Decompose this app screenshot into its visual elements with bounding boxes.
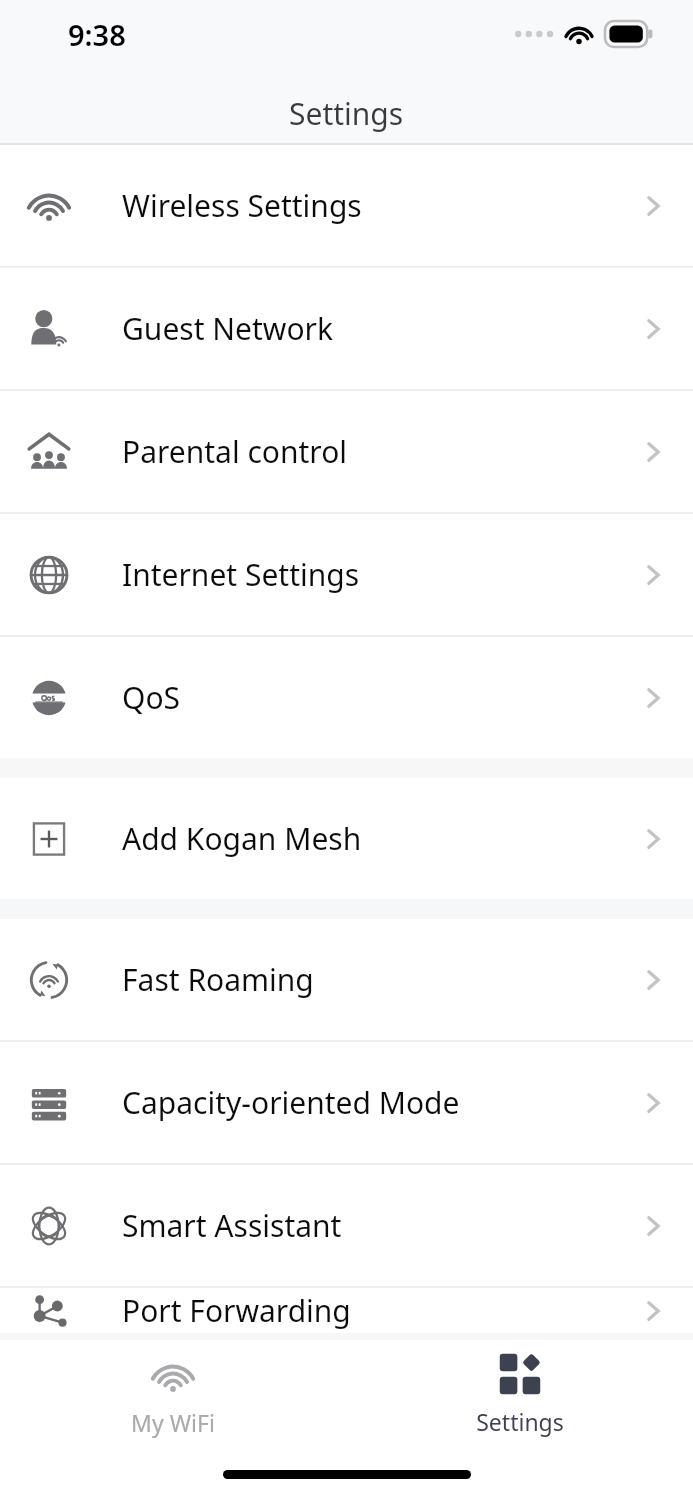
button[interactable]: Add Kogan Mesh <box>0 778 693 899</box>
staticText: 9:38 <box>68 15 126 54</box>
staticText: Internet Settings <box>122 554 613 595</box>
button[interactable]: My WiFi <box>0 1345 346 1444</box>
button[interactable]: Port Forwarding <box>0 1288 693 1333</box>
button[interactable]: Guest Network <box>0 268 693 389</box>
button[interactable]: Wireless Settings <box>0 145 693 266</box>
staticText: Fast Roaming <box>122 959 613 1000</box>
staticText: Settings <box>476 1406 564 1437</box>
button[interactable]: Capacity-oriented Mode <box>0 1042 693 1163</box>
staticText: QoS <box>122 677 613 718</box>
staticText: My WiFi <box>131 1407 215 1438</box>
staticText: Wireless Settings <box>122 185 613 226</box>
button[interactable]: Fast Roaming <box>0 919 693 1040</box>
button[interactable]: QoS <box>0 637 693 758</box>
staticText: Capacity-oriented Mode <box>122 1082 613 1123</box>
button[interactable]: Internet Settings <box>0 514 693 635</box>
staticText: Parental control <box>122 431 613 472</box>
staticText: Guest Network <box>122 308 613 349</box>
button[interactable]: Smart Assistant <box>0 1165 693 1286</box>
staticText: Smart Assistant <box>122 1205 613 1246</box>
staticText: Settings <box>289 93 404 134</box>
staticText: Port Forwarding <box>122 1290 613 1331</box>
button[interactable]: Settings <box>346 1346 693 1443</box>
button[interactable]: Parental control <box>0 391 693 512</box>
staticText: Add Kogan Mesh <box>122 818 613 859</box>
